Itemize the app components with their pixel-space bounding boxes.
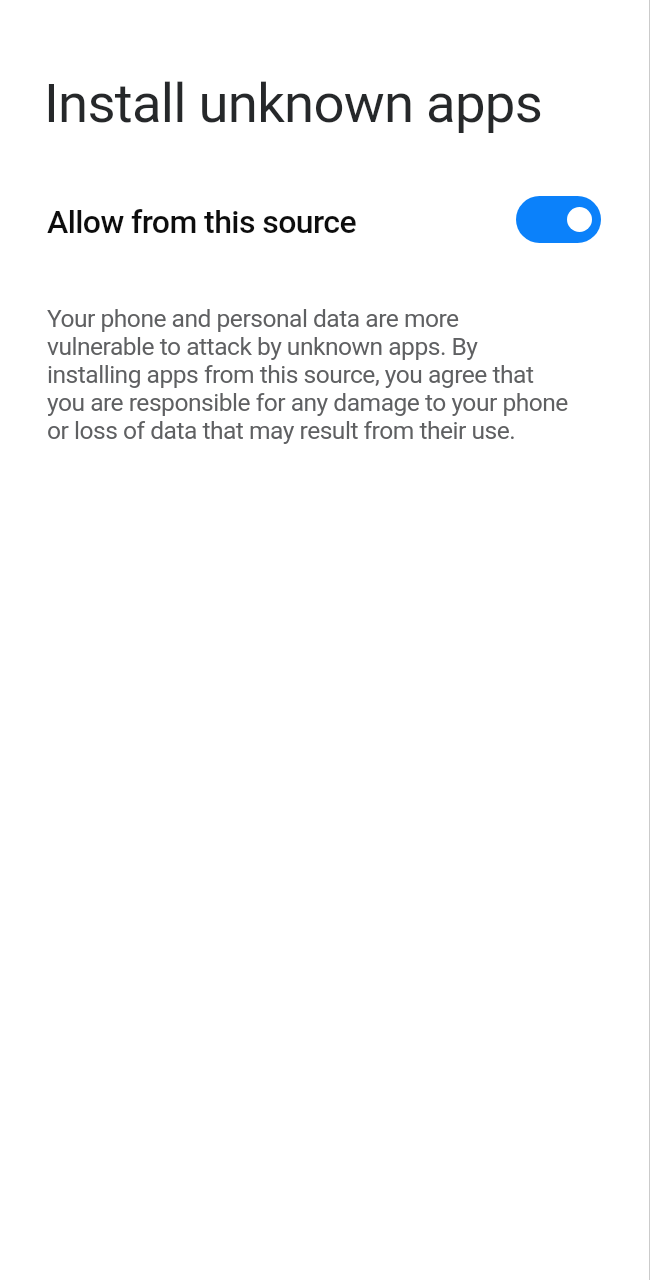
button[interactable]: Allow from this source, on xyxy=(516,196,601,243)
staticText: Allow from this source xyxy=(47,203,357,241)
staticText: Install unknown apps xyxy=(44,71,543,135)
button[interactable]: Allow from this source xyxy=(0,179,650,259)
staticText: Your phone and personal data are more vu… xyxy=(47,304,568,445)
